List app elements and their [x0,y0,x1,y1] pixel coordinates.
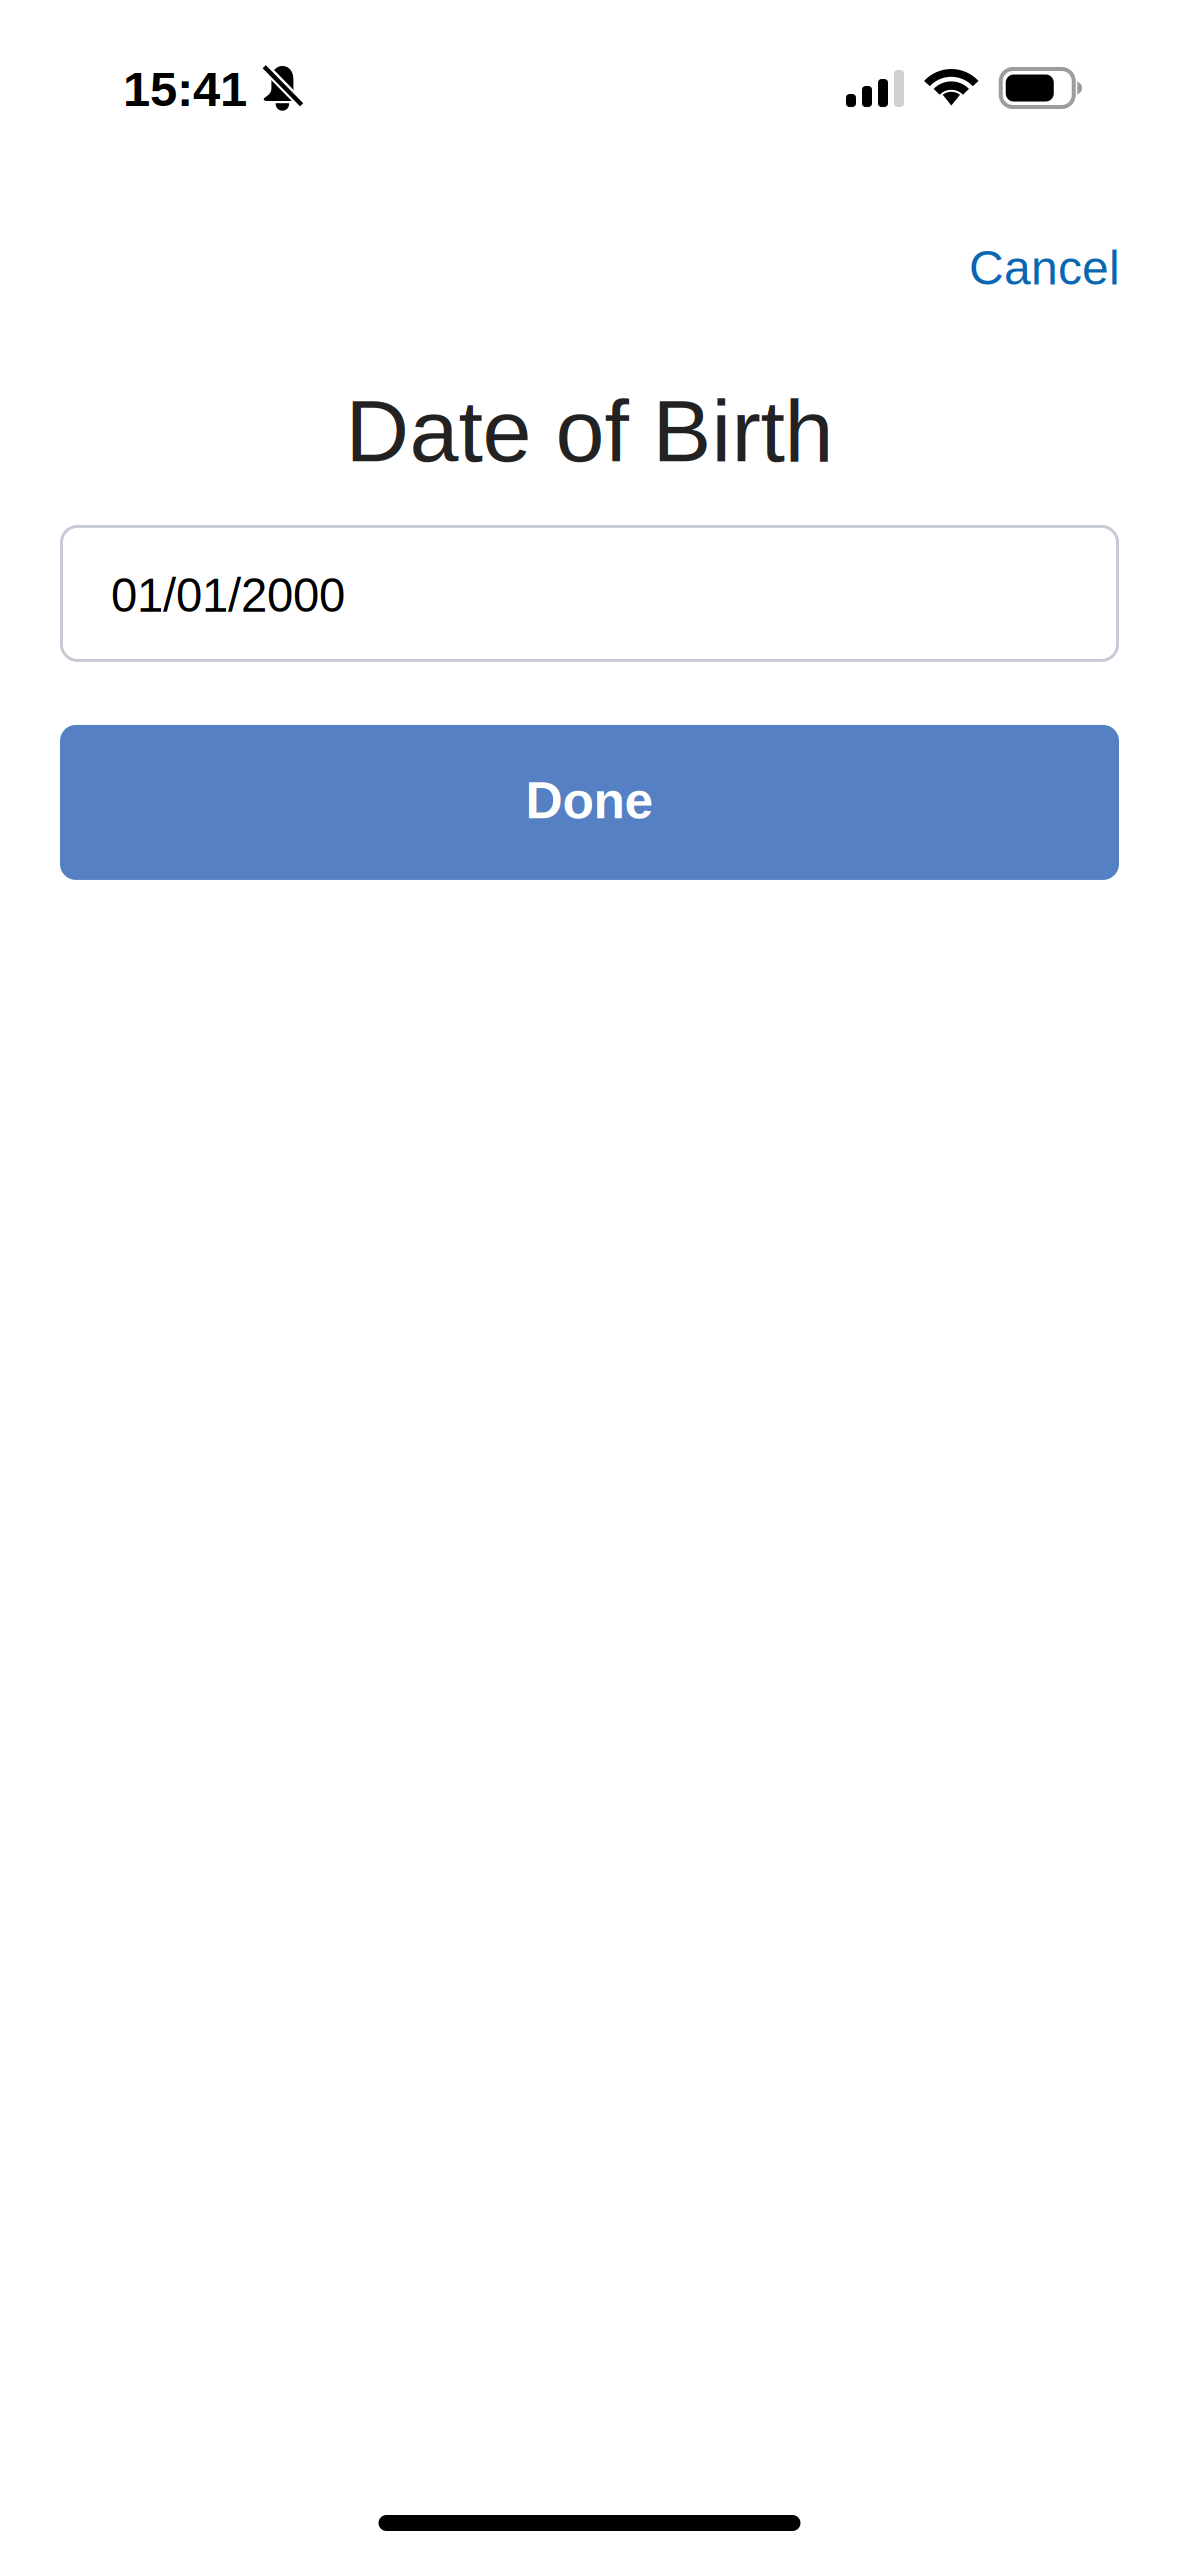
staticText: Cancel [969,241,1120,295]
button[interactable]: Done [60,725,1119,880]
staticText: 15:41 [123,62,247,116]
button[interactable]: 01/01/2000 [60,525,1119,662]
staticText: Done [525,772,653,829]
staticText: Date of Birth [345,382,833,480]
button[interactable]: Cancel [956,229,1133,307]
staticText: 01/01/2000 [111,569,345,622]
